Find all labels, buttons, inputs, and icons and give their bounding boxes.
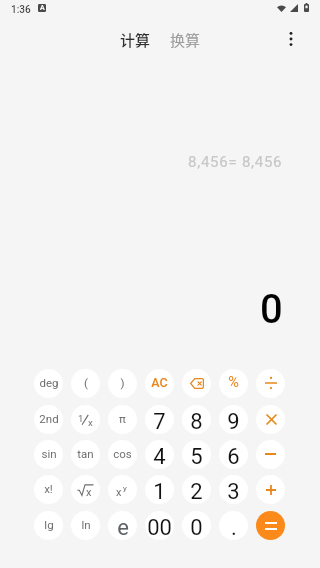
button[interactable]: 2nd — [34, 405, 63, 434]
button[interactable]: 9 — [219, 405, 248, 434]
staticText: x! — [44, 482, 53, 495]
staticText: x — [116, 486, 122, 499]
button[interactable]: Equals — [256, 511, 285, 540]
staticText: 8,456= 8,456 — [188, 153, 283, 171]
button[interactable]: 5 — [182, 440, 211, 469]
staticText: 2nd — [39, 412, 59, 425]
staticText: 2 — [190, 479, 203, 504]
button[interactable]: e — [108, 511, 137, 540]
button[interactable]: π — [108, 405, 137, 434]
staticText: deg — [39, 376, 59, 389]
staticText: 5 — [190, 444, 203, 469]
staticText: 0 — [260, 286, 283, 333]
button[interactable]: 2 — [182, 475, 211, 504]
button[interactable]: Multiply — [256, 405, 285, 434]
staticText: 1 — [78, 413, 84, 424]
staticText: π — [119, 412, 126, 425]
button[interactable]: deg — [34, 369, 63, 398]
button[interactable]: 换算 — [165, 22, 206, 58]
button[interactable]: lg — [34, 511, 63, 540]
button[interactable]: 4 — [145, 440, 174, 469]
button[interactable]: More options — [282, 30, 300, 48]
button[interactable]: Divide — [256, 369, 285, 398]
button[interactable]: AC — [145, 369, 174, 398]
staticText: e — [117, 515, 129, 540]
button[interactable]: ( — [71, 369, 100, 398]
button[interactable]: Backspace — [182, 369, 211, 398]
button[interactable]: x! — [34, 475, 63, 504]
staticText: ) — [120, 376, 125, 389]
staticText: sin — [41, 447, 57, 460]
button[interactable]: 6 — [219, 440, 248, 469]
staticText: AC — [151, 375, 168, 390]
button[interactable]: 计算 — [115, 22, 156, 58]
staticText: 4 — [153, 444, 166, 469]
staticText: 9 — [227, 409, 240, 434]
staticText: 计算 — [120, 29, 151, 51]
button[interactable]: 8 — [182, 405, 211, 434]
staticText: 8 — [190, 409, 203, 434]
staticText: 00 — [147, 515, 172, 540]
staticText: 1:36 — [11, 4, 31, 16]
staticText: y — [123, 484, 127, 493]
button[interactable]: Square root — [71, 475, 100, 504]
button[interactable]: cos — [108, 440, 137, 469]
button[interactable]: Minus — [256, 440, 285, 469]
button[interactable]: 3 — [219, 475, 248, 504]
button[interactable]: x to the power y — [108, 475, 137, 504]
staticText: tan — [77, 447, 94, 460]
staticText: x — [88, 417, 93, 428]
staticText: 6 — [227, 444, 240, 469]
button[interactable]: . — [219, 511, 248, 540]
staticText: 0 — [190, 515, 203, 540]
staticText: 换算 — [170, 29, 201, 51]
staticText: A — [40, 4, 45, 12]
button[interactable]: 00 — [145, 511, 174, 540]
staticText: x — [86, 486, 92, 499]
button[interactable]: sin — [34, 440, 63, 469]
button[interactable]: One over x — [71, 405, 100, 434]
staticText: . — [231, 515, 237, 540]
staticText: cos — [113, 447, 132, 460]
staticText: % — [228, 374, 239, 391]
staticText: 1 — [153, 479, 166, 504]
staticText: ln — [81, 518, 91, 531]
button[interactable]: ln — [71, 511, 100, 540]
button[interactable]: tan — [71, 440, 100, 469]
button[interactable]: 0 — [182, 511, 211, 540]
button[interactable]: 1 — [145, 475, 174, 504]
button[interactable]: ) — [108, 369, 137, 398]
staticText: ( — [84, 376, 88, 389]
button[interactable]: 7 — [145, 405, 174, 434]
button[interactable]: % — [219, 369, 248, 398]
staticText: 3 — [227, 479, 240, 504]
staticText: 7 — [153, 409, 166, 434]
staticText: lg — [44, 518, 54, 531]
button[interactable]: Plus — [256, 475, 285, 504]
